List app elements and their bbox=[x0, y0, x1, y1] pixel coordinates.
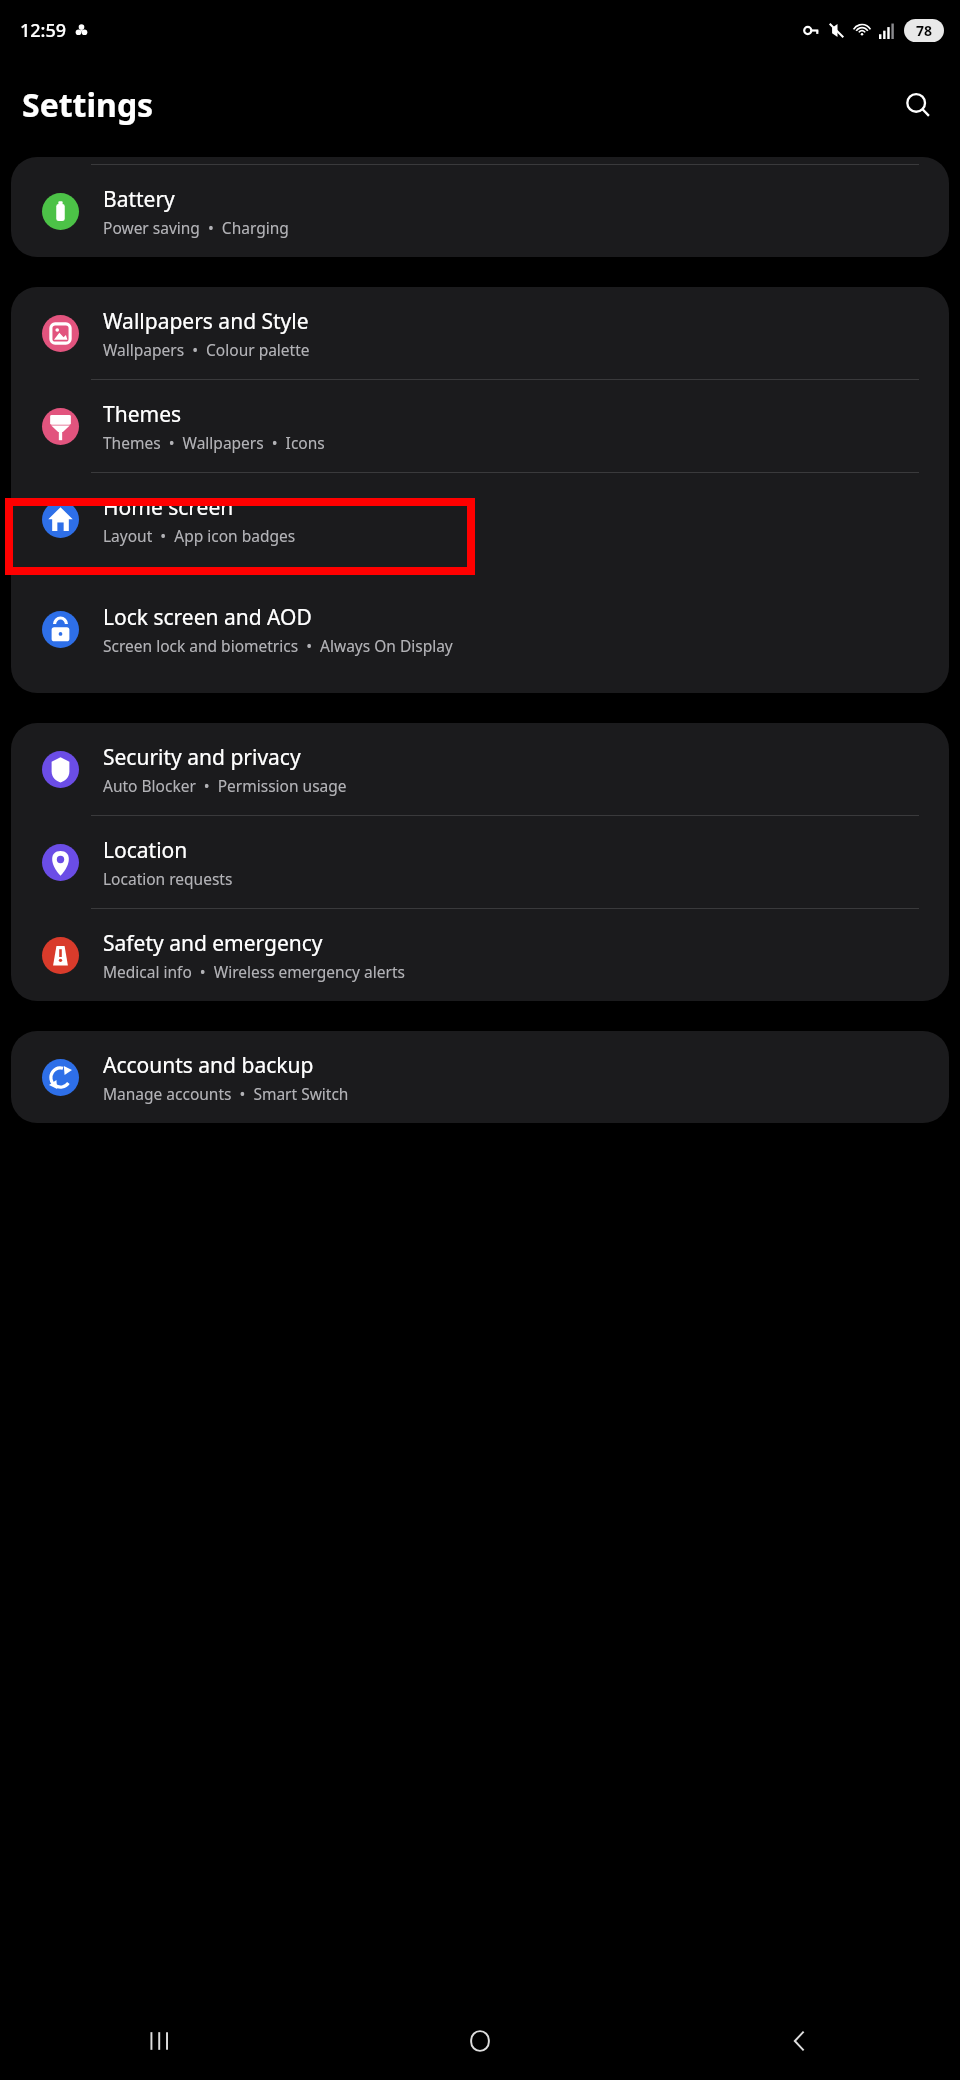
button[interactable]: Accounts and backup bbox=[11, 1031, 949, 1123]
staticText: Accounts and backup bbox=[103, 1051, 314, 1080]
button[interactable]: Wallpapers and Style bbox=[11, 287, 949, 379]
staticText: Themes bbox=[103, 400, 182, 429]
button[interactable]: Recent apps bbox=[0, 2002, 320, 2080]
staticText: Home screen bbox=[103, 493, 234, 522]
button[interactable]: Lock screen and AOD bbox=[11, 565, 949, 693]
staticText: Location requests bbox=[103, 868, 233, 889]
staticText: Layout • App icon badges bbox=[103, 525, 296, 546]
button[interactable]: Back bbox=[640, 2002, 960, 2080]
button[interactable]: Location bbox=[11, 816, 949, 908]
button[interactable]: Safety and emergency bbox=[11, 909, 949, 1001]
staticText: Medical info • Wireless emergency alerts bbox=[103, 961, 405, 982]
staticText: 78 bbox=[916, 21, 933, 40]
staticText: 12:59 bbox=[20, 18, 67, 43]
staticText: Settings bbox=[22, 83, 154, 127]
staticText: Themes • Wallpapers • Icons bbox=[103, 432, 325, 453]
button[interactable]: Battery bbox=[11, 165, 949, 257]
button[interactable]: Home screen bbox=[11, 473, 949, 565]
button[interactable]: Search bbox=[896, 83, 940, 127]
staticText: Auto Blocker • Permission usage bbox=[103, 775, 347, 796]
staticText: Screen lock and biometrics • Always On D… bbox=[103, 635, 453, 656]
staticText: Wallpapers • Colour palette bbox=[103, 339, 310, 360]
staticText: Wallpapers and Style bbox=[103, 307, 309, 336]
staticText: Safety and emergency bbox=[103, 929, 323, 958]
staticText: Power saving • Charging bbox=[103, 217, 289, 238]
staticText: Security and privacy bbox=[103, 743, 301, 772]
staticText: Location bbox=[103, 836, 188, 865]
staticText: Battery bbox=[103, 185, 175, 214]
button[interactable]: Home bbox=[320, 2002, 640, 2080]
button[interactable]: Security and privacy bbox=[11, 723, 949, 815]
button[interactable]: Themes bbox=[11, 380, 949, 472]
staticText: Manage accounts • Smart Switch bbox=[103, 1083, 349, 1104]
staticText: Lock screen and AOD bbox=[103, 603, 312, 632]
